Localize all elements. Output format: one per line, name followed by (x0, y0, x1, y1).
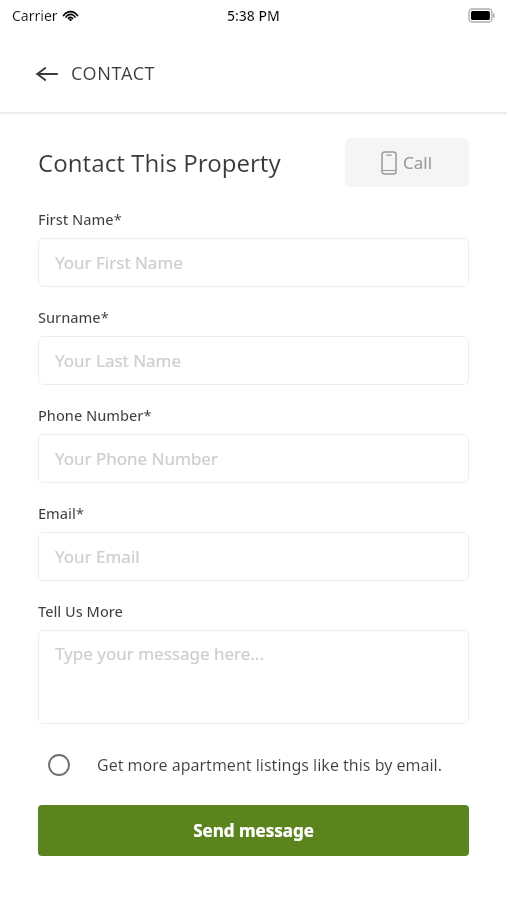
staticText: Your Last Name (55, 349, 182, 372)
staticText: Your Phone Number (55, 447, 218, 470)
staticText: Carrier (12, 6, 58, 25)
staticText: Call (403, 151, 433, 174)
button[interactable]: Your Last Name (38, 336, 469, 385)
button[interactable]: Your Phone Number (38, 434, 469, 483)
button[interactable]: Back (30, 53, 162, 94)
staticText: Tell Us More (38, 601, 123, 621)
staticText: Contact This Property (38, 146, 345, 179)
staticText: Surname* (38, 307, 109, 327)
staticText: Phone Number* (38, 405, 152, 425)
staticText: Your Email (55, 545, 140, 568)
button[interactable]: Your First Name (38, 238, 469, 287)
staticText: Type your message here... (55, 642, 264, 665)
staticText: Your First Name (55, 251, 183, 274)
staticText: Email* (38, 503, 84, 523)
staticText: First Name* (38, 209, 122, 229)
staticText: Send message (193, 819, 314, 842)
staticText: CONTACT (71, 61, 156, 86)
button[interactable]: Type your message here... (38, 630, 469, 724)
staticText: 5:38 PM (227, 6, 280, 25)
button[interactable]: Call (345, 138, 469, 187)
button[interactable]: Send message (38, 805, 469, 856)
button[interactable]: Your Email (38, 532, 469, 581)
other: Back (36, 63, 58, 85)
staticText: Get more apartment listings like this by… (97, 754, 443, 776)
button[interactable]: Subscribe to listings (38, 744, 469, 786)
other: Subscribe to listings (48, 754, 70, 776)
